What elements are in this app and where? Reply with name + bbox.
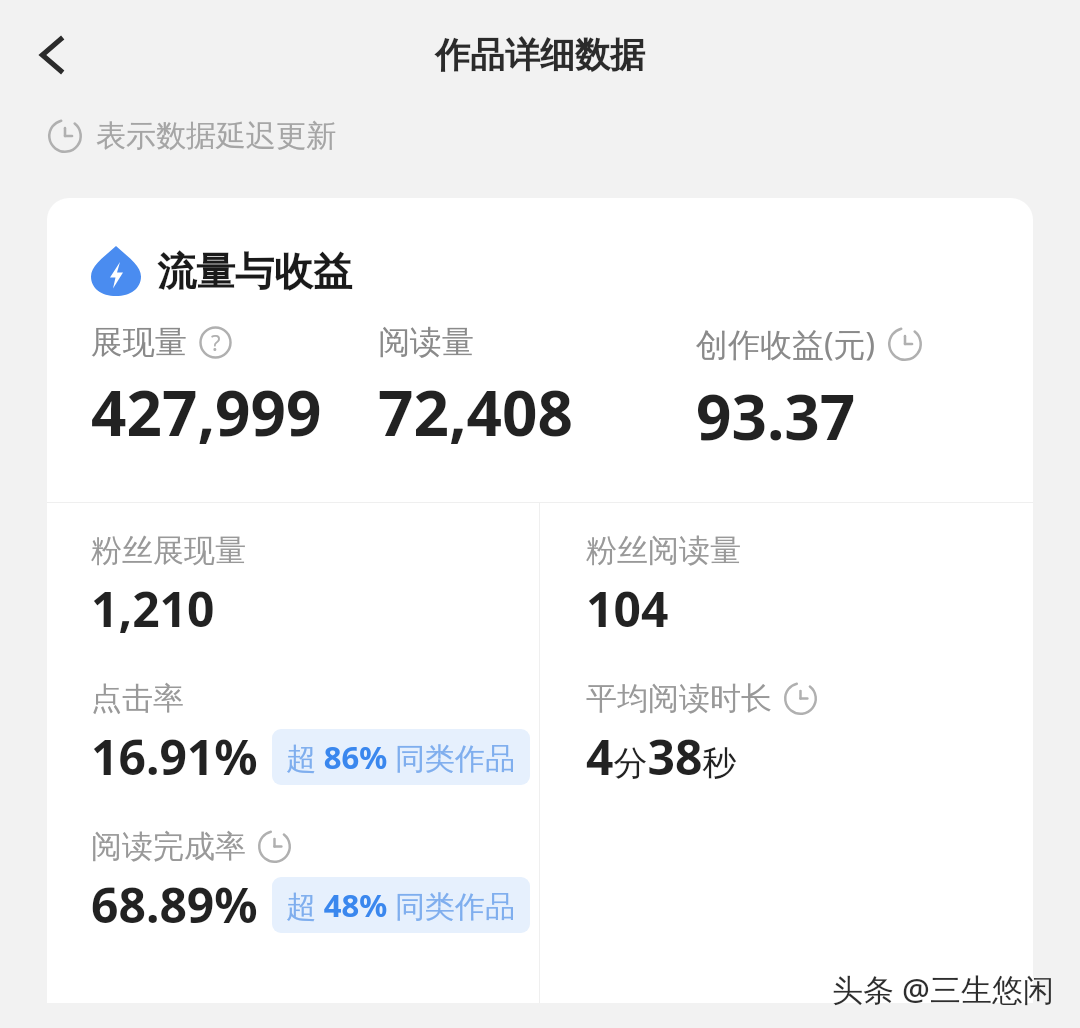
- staticText: 粉丝阅读量: [586, 531, 741, 570]
- button[interactable]: 平均阅读时长: [540, 651, 1033, 799]
- staticText: 427,999: [91, 370, 322, 454]
- staticText: 粉丝展现量: [91, 531, 246, 570]
- button[interactable]: 创作收益(元): [696, 322, 1033, 458]
- staticText: 72,408: [378, 370, 573, 454]
- staticText: ?: [211, 328, 221, 358]
- staticText: 阅读量: [378, 322, 474, 362]
- button[interactable]: 粉丝阅读量: [540, 503, 1033, 651]
- staticText: 阅读完成率: [91, 827, 246, 866]
- button[interactable]: 展现量: [91, 322, 378, 454]
- button[interactable]: 阅读量: [378, 322, 696, 454]
- staticText: 16.91%: [91, 724, 258, 789]
- button[interactable]: 粉丝展现量: [47, 503, 539, 651]
- button[interactable]: Back: [14, 17, 90, 93]
- staticText: 表示数据延迟更新: [96, 117, 336, 155]
- button[interactable]: 超 48% 同类作品: [272, 877, 530, 933]
- staticText: 头条 @三生悠闲: [832, 968, 1054, 1010]
- staticText: 4分38秒: [586, 724, 737, 789]
- staticText: 作品详细数据: [435, 33, 645, 77]
- staticText: 点击率: [91, 679, 184, 718]
- staticText: 104: [586, 576, 669, 641]
- staticText: 93.37: [696, 374, 856, 458]
- staticText: 创作收益(元): [696, 322, 876, 366]
- button[interactable]: 点击率: [47, 651, 539, 799]
- staticText: 1,210: [91, 576, 215, 641]
- other: Traffic and revenue: [91, 246, 141, 296]
- button[interactable]: 超 86% 同类作品: [272, 729, 530, 785]
- staticText: 展现量: [91, 322, 187, 362]
- staticText: 平均阅读时长: [586, 679, 772, 718]
- staticText: 超 48% 同类作品: [286, 884, 516, 926]
- staticText: 68.89%: [91, 872, 258, 937]
- staticText: 流量与收益: [157, 247, 352, 296]
- button[interactable]: 阅读完成率: [47, 799, 539, 947]
- staticText: 超 86% 同类作品: [286, 736, 516, 778]
